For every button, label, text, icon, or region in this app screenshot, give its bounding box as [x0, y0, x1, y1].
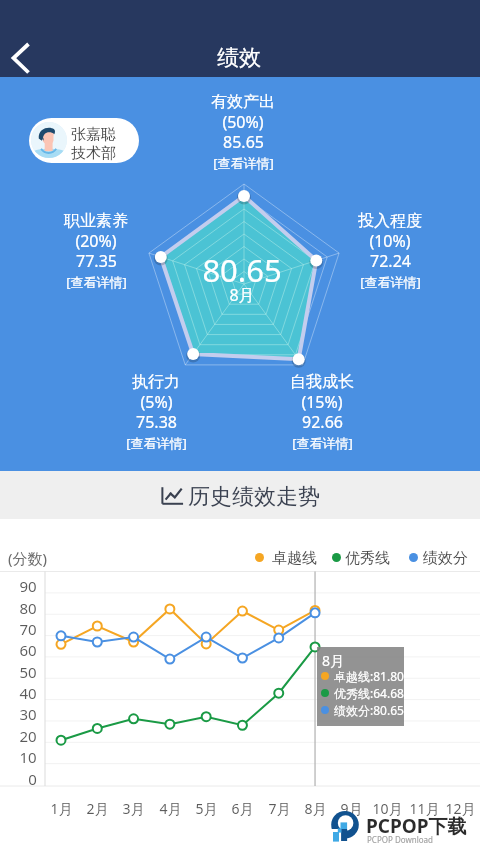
staticText: 历史绩效走势 [188, 483, 320, 511]
button[interactable]: 绩效分 [402, 546, 447, 570]
staticText: [查看详情] [292, 434, 353, 452]
staticText: 10 [19, 747, 37, 767]
staticText: 8月 [322, 651, 345, 670]
staticText: 技术部 [71, 144, 116, 163]
staticText: 5月 [195, 799, 218, 818]
button[interactable]: 执行力 [94, 368, 218, 456]
button[interactable]: 有效产出 [181, 88, 305, 176]
button[interactable]: 张嘉聪 [29, 118, 139, 163]
staticText: (分数) [8, 548, 48, 568]
staticText: [查看详情] [213, 154, 274, 172]
staticText: 75.38 [136, 411, 177, 433]
staticText: 50 [19, 662, 37, 682]
staticText: 执行力 [132, 372, 180, 392]
staticText: 8月 [229, 284, 255, 306]
staticText: 优秀线 [345, 549, 390, 568]
staticText: [查看详情] [66, 273, 127, 291]
staticText: 72.24 [370, 250, 411, 272]
staticText: PCPOP下载 [366, 813, 467, 839]
staticText: [查看详情] [126, 434, 187, 452]
staticText: 9月 [340, 799, 363, 818]
button[interactable] [0, 471, 480, 519]
staticText: 绩效分 [423, 549, 468, 568]
staticText: (20%) [75, 230, 117, 252]
staticText: 有效产出 [211, 92, 275, 112]
staticText: 80 [19, 598, 37, 618]
button[interactable]: Back [0, 34, 48, 82]
staticText: 8月 [304, 799, 327, 818]
staticText: 0 [28, 769, 37, 789]
button[interactable]: 自我成长 [260, 368, 384, 456]
staticText: 10月 [372, 799, 403, 818]
staticText: 11月 [409, 799, 440, 818]
staticText: 绩效 [217, 44, 261, 72]
staticText: 90 [19, 576, 37, 596]
staticText: 自我成长 [290, 372, 354, 392]
button[interactable]: 优秀线 [325, 546, 370, 570]
staticText: 职业素养 [64, 211, 128, 231]
staticText: (50%) [222, 111, 264, 133]
staticText: 77.35 [76, 250, 117, 272]
staticText: 92.66 [302, 411, 343, 433]
staticText: (10%) [369, 230, 411, 252]
staticText: 60 [19, 640, 37, 660]
staticText: PCPOP Download [367, 834, 433, 845]
button[interactable]: 职业素养 [34, 207, 158, 295]
staticText: 70 [19, 619, 37, 639]
staticText: (5%) [140, 391, 173, 413]
button[interactable]: 卓越线 [248, 546, 293, 570]
staticText: 投入程度 [358, 211, 422, 231]
staticText: 30 [19, 704, 37, 724]
staticText: [查看详情] [360, 273, 421, 291]
staticText: 卓越线:81.80 [334, 668, 404, 684]
staticText: 绩效分:80.65 [334, 702, 404, 718]
staticText: 85.65 [223, 131, 264, 153]
staticText: 卓越线 [272, 549, 317, 568]
button[interactable]: 投入程度 [328, 207, 452, 295]
staticText: 2月 [86, 799, 109, 818]
staticText: 80.65 [202, 249, 282, 291]
staticText: 1月 [50, 799, 73, 818]
staticText: 7月 [268, 799, 291, 818]
staticText: 40 [19, 683, 37, 703]
staticText: 4月 [159, 799, 182, 818]
staticText: 张嘉聪 [71, 125, 116, 144]
staticText: 优秀线:64.68 [334, 685, 404, 701]
staticText: (15%) [301, 391, 343, 413]
staticText: 12月 [445, 799, 476, 818]
staticText: 6月 [231, 799, 254, 818]
staticText: 20 [19, 726, 37, 746]
staticText: 3月 [122, 799, 145, 818]
